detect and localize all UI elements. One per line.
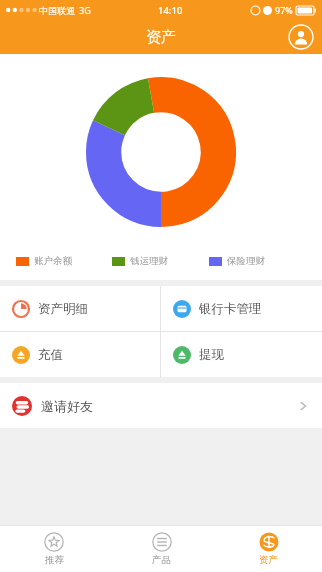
staticText: 产品 (152, 554, 171, 566)
staticText: 资产 (146, 28, 176, 47)
button[interactable]: 产品 (108, 526, 215, 572)
staticText: 保险理财 (227, 255, 265, 267)
button[interactable]: 邀请好友 (0, 383, 322, 428)
button[interactable]: 银行卡管理 (161, 286, 322, 331)
staticText: 银行卡管理 (199, 301, 262, 317)
staticText: 钱运理财 (130, 255, 168, 267)
staticText: 提现 (199, 347, 224, 363)
staticText: 97% (275, 4, 293, 16)
staticText: 资产 (259, 554, 278, 566)
staticText: 资产明细 (38, 301, 88, 317)
staticText: 中国联通 (39, 5, 75, 16)
button[interactable]: 推荐 (0, 526, 108, 572)
button[interactable]: 资产明细 (0, 286, 160, 331)
staticText: 3G (79, 4, 91, 16)
staticText: 账户余额 (34, 255, 72, 267)
button[interactable]: 资产 (215, 526, 322, 572)
button[interactable]: Profile (288, 24, 314, 50)
button[interactable]: 提现 (161, 332, 322, 377)
staticText: 推荐 (45, 554, 64, 566)
staticText: 充值 (38, 347, 63, 363)
other: Open (296, 399, 310, 413)
staticText: 14:10 (158, 4, 183, 17)
button[interactable]: 充值 (0, 332, 160, 377)
staticText: 邀请好友 (41, 398, 93, 414)
